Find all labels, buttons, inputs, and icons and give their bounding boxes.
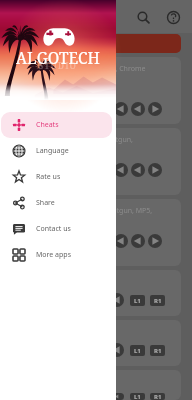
- staticText: Cheats: [36, 120, 59, 130]
- button[interactable]: More apps: [1, 242, 112, 268]
- button[interactable]: GTA 5 Weapons 2: Stubby Shotgun, AK-47, …: [9, 128, 181, 195]
- button[interactable]: Contact us: [1, 216, 112, 242]
- button[interactable]: Share: [1, 190, 112, 216]
- button[interactable]: Play cheat: [110, 293, 124, 307]
- button[interactable]: Play cheat: [148, 102, 162, 116]
- staticText: L1: [134, 393, 141, 400]
- button[interactable]: GTA 5 Health & Armor: [9, 270, 181, 316]
- button[interactable]: Play cheat: [114, 102, 128, 116]
- button[interactable]: Play cheat: [110, 393, 124, 400]
- staticText: ALGOTECH: [0, 47, 116, 68]
- button[interactable]: Help: [161, 5, 185, 29]
- button[interactable]: Play cheat: [114, 234, 128, 248]
- button[interactable]: Search: [131, 5, 155, 29]
- button[interactable]: GTA 5 Wanted Level Up: [9, 320, 181, 366]
- button[interactable]: Play cheat: [148, 234, 162, 248]
- staticText: GTA 5 Weapons 1: 9mm Pistol, Chrome Shot…: [18, 64, 175, 94]
- button[interactable]: Play cheat: [114, 163, 128, 177]
- staticText: Language: [36, 146, 69, 156]
- button[interactable]: GTA 5 Wanted Level Down: [9, 370, 181, 400]
- button[interactable]: GTA 5 Cheats: [9, 34, 181, 53]
- staticText: STUDIO: [0, 60, 116, 71]
- button[interactable]: Play cheat: [110, 343, 124, 357]
- button[interactable]: Play cheat: [131, 234, 145, 248]
- staticText: GTA 5 Weapons 3: Assault Shotgun, MP5, G…: [18, 206, 153, 226]
- button[interactable]: Language: [1, 138, 112, 164]
- staticText: R1: [154, 297, 162, 305]
- button[interactable]: GTA 5 Weapons 1: 9mm Pistol, Chrome Shot…: [9, 57, 181, 124]
- button[interactable]: Play cheat: [131, 102, 145, 116]
- staticText: GTA 5 Cheats: [17, 38, 67, 49]
- button[interactable]: GTA 5 Weapons 3: Assault Shotgun, MP5, G…: [9, 199, 181, 266]
- button[interactable]: Cheats: [1, 112, 112, 138]
- staticText: L1: [134, 297, 141, 305]
- button[interactable]: Rate us: [1, 164, 112, 190]
- button[interactable]: Play cheat: [148, 163, 162, 177]
- staticText: Share: [36, 198, 55, 208]
- staticText: L1: [134, 347, 141, 355]
- staticText: Contact us: [36, 224, 71, 234]
- button[interactable]: Play cheat: [131, 163, 145, 177]
- staticText: R1: [154, 393, 162, 400]
- staticText: GTA 5 Weapons 2: Stubby Shotgun, AK-47, …: [18, 135, 133, 155]
- staticText: Rate us: [36, 172, 61, 182]
- staticText: More apps: [36, 250, 71, 260]
- staticText: R1: [154, 347, 162, 355]
